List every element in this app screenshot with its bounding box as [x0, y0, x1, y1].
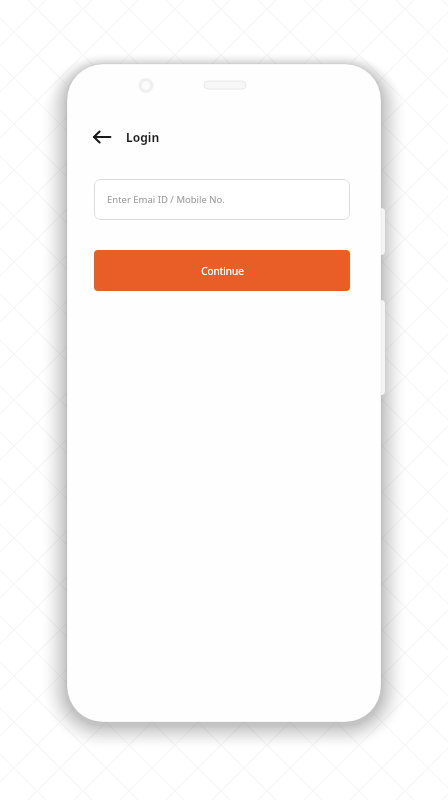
staticText: Login — [126, 129, 160, 145]
button[interactable]: Continue — [94, 250, 350, 291]
button[interactable]: Enter Emai ID / Mobile No. — [94, 179, 350, 220]
staticText: Enter Emai ID / Mobile No. — [107, 193, 225, 206]
staticText: Continue — [201, 264, 244, 278]
button[interactable]: Back — [87, 122, 117, 152]
